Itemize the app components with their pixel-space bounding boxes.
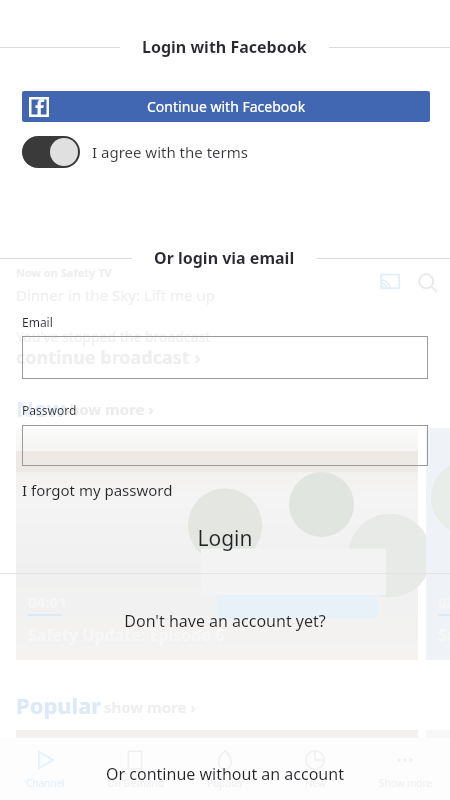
staticText: Sa [438, 624, 450, 646]
staticText: Safety Update: Episode 6 [28, 624, 225, 646]
staticText: I forgot my password [22, 480, 173, 500]
staticText: Popular [16, 690, 102, 720]
staticText: Email [22, 314, 53, 330]
staticText: Or login via email [154, 247, 295, 269]
staticText: New [305, 776, 326, 790]
button[interactable]: Search [413, 268, 443, 298]
button[interactable]: I agree with the terms [22, 136, 248, 168]
button[interactable] [22, 336, 428, 379]
staticText: Password [22, 402, 77, 418]
button[interactable]: Popular [180, 738, 270, 800]
staticText: Login with Facebook [142, 36, 307, 58]
button[interactable]: 04:01 [16, 428, 418, 660]
staticText: Login [197, 524, 253, 553]
staticText: Now on Safety TV [16, 265, 112, 280]
button[interactable]: 03: [426, 428, 450, 660]
button[interactable]: New [270, 738, 360, 800]
button[interactable]: Don't have an account yet? [0, 605, 450, 637]
staticText: Show more [379, 776, 432, 790]
button[interactable]: On Demand [90, 738, 180, 800]
staticText: show more › [62, 399, 154, 419]
staticText: Dinner in the Sky: Lift me up [16, 285, 215, 305]
button[interactable]: Continue with Facebook [22, 91, 430, 122]
staticText: continue broadcast › [16, 345, 201, 370]
staticText: On Demand [107, 776, 164, 790]
staticText: Popular [207, 776, 244, 790]
button[interactable] [22, 425, 428, 466]
button[interactable]: Cast [375, 268, 405, 298]
staticText: show more › [104, 697, 196, 717]
staticText: Channel [26, 776, 65, 790]
button[interactable]: Or continue without an account [0, 758, 450, 790]
button[interactable]: Login [0, 520, 450, 556]
button[interactable]: I forgot my password [22, 480, 173, 500]
staticText: Or continue without an account [106, 763, 344, 785]
staticText: Don't have an account yet? [124, 610, 326, 632]
staticText: New [16, 393, 66, 423]
staticText: I agree with the terms [92, 142, 248, 162]
staticText: You've stopped the broadcast [16, 327, 211, 346]
staticText: Continue with Facebook [147, 97, 306, 116]
button[interactable]: Channel [0, 738, 90, 800]
